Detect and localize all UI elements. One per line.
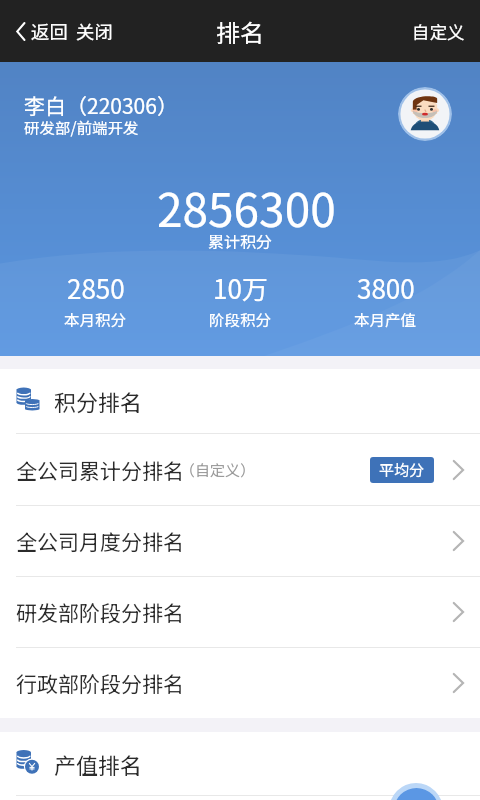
- staticText: 排名: [216, 14, 264, 49]
- staticText: 本月积分: [64, 308, 127, 330]
- staticText: 产值排名: [54, 748, 143, 780]
- staticText: （自定义）: [180, 459, 256, 481]
- button[interactable]: 返回: [10, 10, 75, 53]
- button[interactable]: Avatar: [398, 87, 452, 141]
- button[interactable]: 行政部阶段分排名: [0, 647, 480, 718]
- staticText: 全公司月度分排名: [16, 526, 184, 556]
- staticText: 积分排名: [54, 385, 143, 417]
- staticText: 研发部/前端开发: [24, 116, 139, 138]
- staticText: 李白（220306）: [24, 90, 178, 120]
- button[interactable]: Add: [389, 783, 443, 800]
- staticText: 10万: [213, 269, 268, 307]
- staticText: 平均分: [379, 459, 425, 481]
- staticText: 自定义: [412, 19, 465, 44]
- button[interactable]: 研发部阶段分排名: [0, 576, 480, 647]
- staticText: 研发部阶段分排名: [16, 597, 184, 627]
- staticText: 本月产值: [354, 308, 417, 330]
- button[interactable]: 全公司月度分排名: [0, 505, 480, 576]
- button[interactable]: 自定义: [397, 9, 480, 54]
- staticText: 返回: [31, 18, 69, 45]
- staticText: 行政部阶段分排名: [16, 668, 184, 698]
- button[interactable]: 全公司累计分排名: [0, 433, 480, 505]
- staticText: 2856300: [157, 174, 336, 241]
- staticText: 全公司累计分排名: [16, 455, 184, 485]
- staticText: 2850: [67, 269, 125, 307]
- staticText: 关闭: [76, 18, 114, 45]
- button[interactable]: 关闭: [75, 10, 118, 53]
- staticText: 阶段积分: [209, 308, 272, 330]
- staticText: 累计积分: [208, 229, 273, 252]
- staticText: 3800: [357, 269, 415, 307]
